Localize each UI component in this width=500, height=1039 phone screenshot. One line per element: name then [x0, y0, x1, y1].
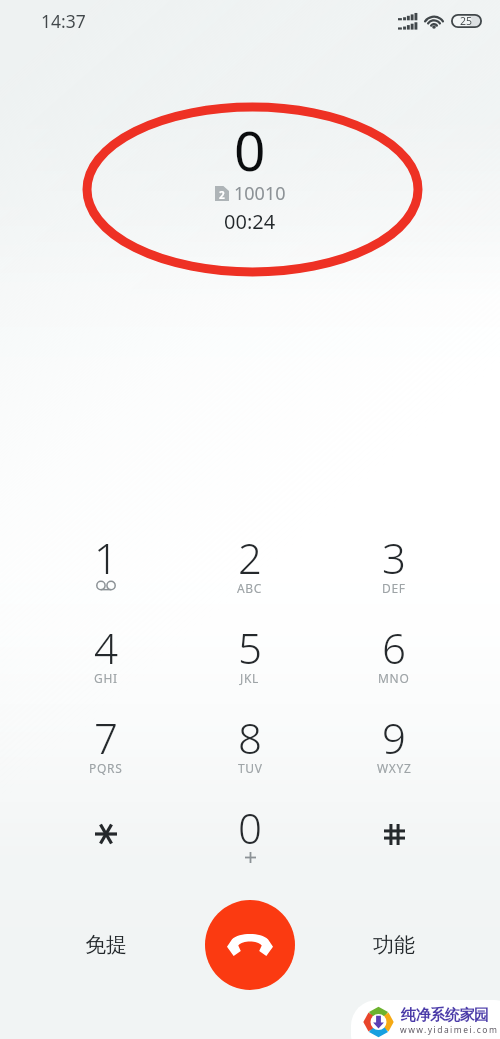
staticText: 功能 — [373, 932, 415, 958]
button[interactable] — [34, 793, 178, 883]
staticText: JKL — [240, 670, 260, 686]
staticText: 1 — [94, 529, 118, 586]
staticText: 10010 — [234, 181, 286, 206]
staticText: 5 — [238, 619, 262, 676]
staticText: TUV — [238, 760, 263, 776]
button[interactable]: 4 — [34, 613, 178, 703]
staticText: WXYZ — [377, 760, 412, 776]
button[interactable]: 2 — [178, 523, 322, 613]
staticText: 2 — [219, 188, 225, 202]
staticText: 0 — [238, 799, 262, 856]
staticText: 14:37 — [41, 9, 86, 33]
staticText: GHI — [94, 670, 118, 686]
staticText: 00:24 — [224, 208, 276, 235]
button[interactable]: 9 — [322, 703, 466, 793]
staticText: 2 — [238, 529, 262, 586]
staticText: DEF — [382, 580, 406, 596]
button[interactable]: 7 — [34, 703, 178, 793]
button[interactable]: 免提 — [34, 900, 178, 990]
button[interactable]: End call — [205, 900, 295, 990]
staticText: PQRS — [89, 760, 123, 776]
staticText: 3 — [382, 529, 406, 586]
staticText: 9 — [382, 709, 406, 766]
button[interactable]: 1 — [34, 523, 178, 613]
staticText: 6 — [382, 619, 406, 676]
staticText: 免提 — [85, 932, 127, 958]
staticText: www.yidaimei.com — [400, 1024, 499, 1036]
button[interactable]: 3 — [322, 523, 466, 613]
button[interactable] — [322, 793, 466, 883]
staticText: 0 — [234, 112, 266, 187]
button[interactable]: 8 — [178, 703, 322, 793]
button[interactable]: 0 — [178, 793, 322, 883]
button[interactable]: 6 — [322, 613, 466, 703]
staticText: 4 — [94, 619, 118, 676]
staticText: 25 — [460, 14, 473, 28]
button[interactable]: 功能 — [322, 900, 466, 990]
staticText: MNO — [378, 670, 410, 686]
staticText: 8 — [238, 709, 262, 766]
button[interactable]: 5 — [178, 613, 322, 703]
staticText: 纯净系统家园 — [401, 1006, 489, 1025]
staticText: 7 — [94, 709, 118, 766]
staticText: ABC — [237, 580, 263, 596]
